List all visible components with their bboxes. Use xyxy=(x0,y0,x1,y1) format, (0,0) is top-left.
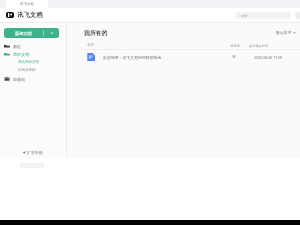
button[interactable]: 我的文档 xyxy=(4,50,66,58)
staticText: 最近 xyxy=(13,44,22,49)
staticText: 扩容升级 xyxy=(27,150,43,155)
staticText: 讯飞文档 xyxy=(17,11,43,19)
staticText: 创建者 xyxy=(230,44,241,48)
button[interactable]: 最近 xyxy=(4,42,66,50)
staticText: 默认排序 xyxy=(276,30,292,35)
staticText: 讯飞文档 xyxy=(20,2,34,6)
staticText: 名称 xyxy=(87,43,95,48)
button[interactable]: 新建文档 xyxy=(4,28,59,38)
button[interactable]: 搜索 xyxy=(235,12,291,19)
button[interactable]: 与我共享的 xyxy=(18,66,66,74)
staticText: 新建文档 xyxy=(15,31,32,36)
button[interactable]: 我共享的文档 xyxy=(18,58,66,66)
staticText: 与我共享的 xyxy=(18,68,36,72)
button[interactable]: 默认排序 xyxy=(276,30,296,35)
staticText: 我共享的文档 xyxy=(18,60,39,64)
button[interactable]: 扩容升级 xyxy=(0,148,66,157)
staticText: 回收站 xyxy=(13,77,26,82)
button[interactable]: 讯飞文档 xyxy=(6,0,48,8)
staticText: 2020-08-06 17:38 xyxy=(254,55,283,60)
staticText: 欢迎使用：讯飞文档使用帮助指南 xyxy=(103,55,162,60)
staticText: 我的文档 xyxy=(13,52,30,57)
button[interactable]: 回收站 xyxy=(4,75,66,83)
staticText: 我所有的 xyxy=(84,29,108,36)
button[interactable]: 欢迎使用：讯飞文档使用帮助指南 xyxy=(87,50,300,64)
staticText: 我 xyxy=(232,55,236,60)
staticText: 最后修改时间 xyxy=(249,44,269,48)
staticText: 搜索 xyxy=(241,14,248,18)
button[interactable]: Account xyxy=(295,12,300,19)
